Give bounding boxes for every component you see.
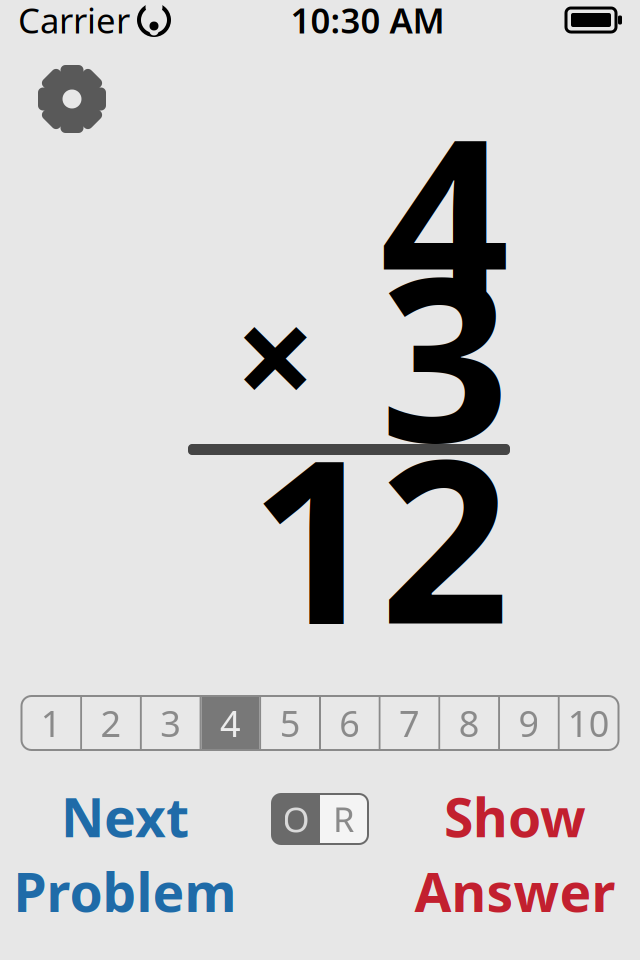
button[interactable]: R — [320, 794, 368, 844]
staticText: 10 — [568, 699, 610, 747]
staticText: O — [282, 796, 309, 842]
staticText: 8 — [459, 699, 480, 747]
button[interactable]: 2 — [82, 696, 140, 750]
button[interactable]: Next — [0, 794, 250, 914]
button[interactable]: 8 — [440, 696, 498, 750]
button[interactable]: 5 — [261, 696, 319, 750]
staticText: Carrier — [18, 0, 130, 43]
button[interactable]: 6 — [321, 696, 379, 750]
staticText: 10:30 AM — [290, 0, 444, 43]
staticText: 12 — [250, 385, 510, 686]
staticText: 6 — [339, 699, 360, 747]
staticText: Problem — [13, 856, 236, 927]
staticText: 1 — [41, 699, 62, 747]
staticText: Next — [61, 781, 189, 852]
button[interactable]: O — [272, 794, 320, 844]
button[interactable]: 4 — [202, 696, 259, 750]
button[interactable]: 1 — [22, 696, 80, 750]
staticText: Answer — [414, 856, 615, 927]
button[interactable]: Settings — [27, 56, 117, 142]
staticText: 4 — [220, 699, 241, 747]
button[interactable]: 7 — [381, 696, 438, 750]
staticText: 9 — [518, 699, 539, 747]
staticText: R — [333, 796, 355, 842]
staticText: 3 — [380, 203, 510, 504]
staticText: Show — [444, 781, 586, 852]
staticText: 2 — [101, 699, 122, 747]
button[interactable]: 10 — [560, 696, 617, 750]
staticText: 5 — [280, 699, 301, 747]
staticText: × — [235, 260, 316, 448]
staticText: 4 — [380, 64, 510, 365]
button[interactable]: Show — [390, 794, 640, 914]
button[interactable]: 9 — [500, 696, 558, 750]
staticText: 7 — [399, 699, 420, 747]
button[interactable]: 3 — [142, 696, 200, 750]
staticText: 3 — [160, 699, 181, 747]
